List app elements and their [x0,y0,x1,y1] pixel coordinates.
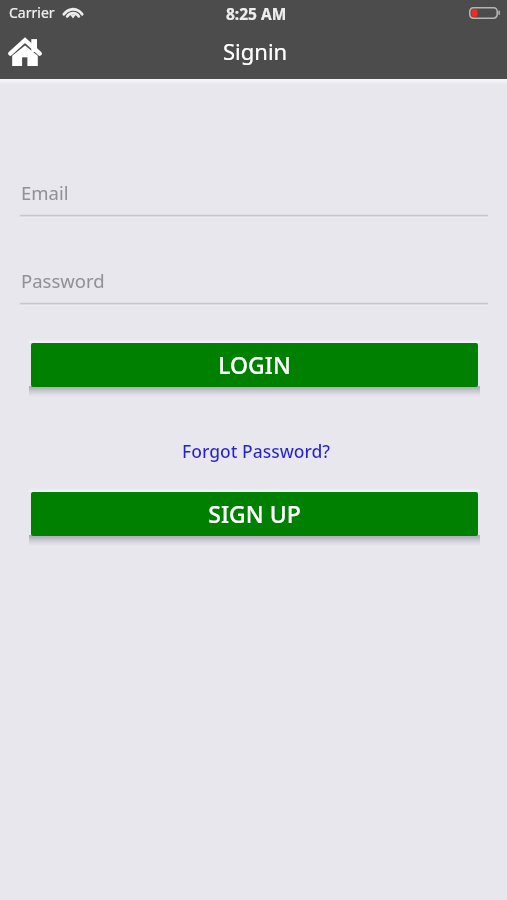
staticText: Password [21,268,105,293]
staticText: LOGIN [218,349,291,380]
staticText: Signin [223,36,288,66]
staticText: SIGN UP [208,498,301,529]
button[interactable]: Forgot Password? [178,438,335,464]
button[interactable]: Email [0,172,507,220]
staticText: Forgot Password? [182,439,331,463]
staticText: Carrier [9,3,55,22]
staticText: Email [21,180,69,205]
button[interactable]: SIGN UP [31,492,478,536]
button[interactable]: Home [2,32,47,72]
button[interactable]: Password [0,260,507,308]
button[interactable]: LOGIN [31,343,478,387]
staticText: 8:25 AM [226,3,287,24]
